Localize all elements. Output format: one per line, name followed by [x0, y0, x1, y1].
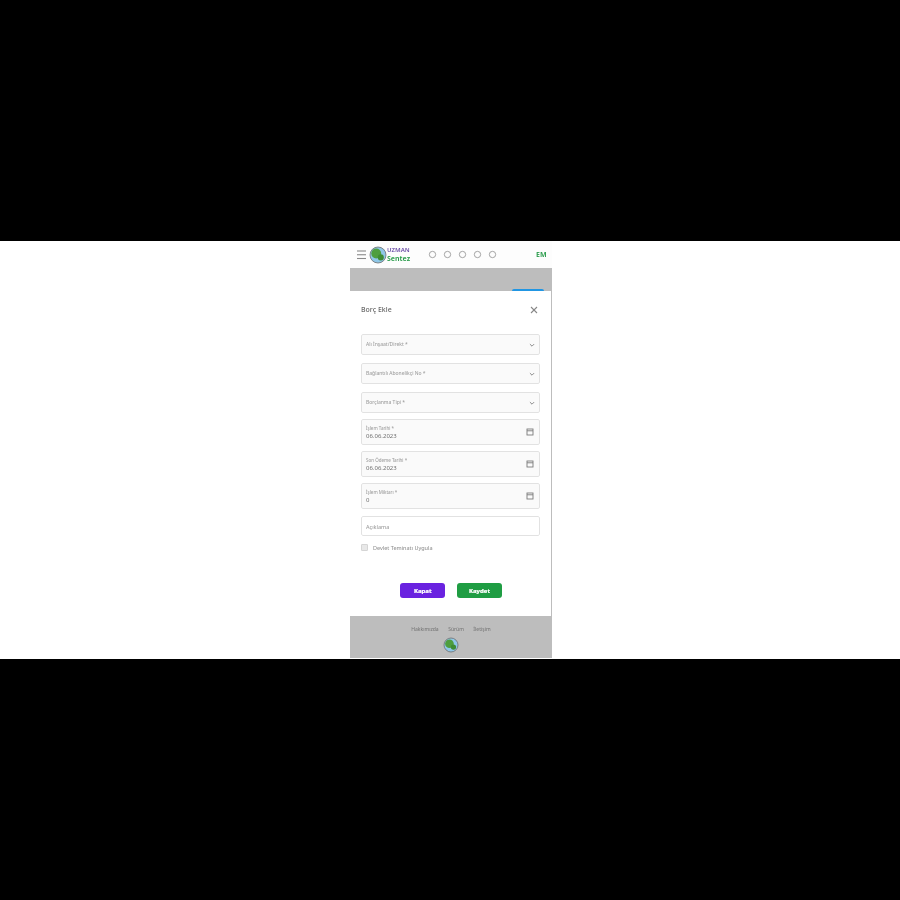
button[interactable]: Pick date — [525, 427, 535, 437]
button[interactable]: Link — [470, 247, 485, 262]
staticText: İletişim — [473, 626, 491, 633]
staticText: Sürüm — [448, 626, 464, 633]
button[interactable]: Bağlantılı Abonelikçi No * — [361, 363, 540, 384]
staticText: Kaydet — [469, 587, 490, 595]
button[interactable]: Son Ödeme Tarihi * — [361, 451, 540, 477]
staticText: UZMAN — [387, 246, 410, 254]
staticText: 06.06.2023 — [366, 432, 397, 440]
button[interactable]: Dashboard — [425, 247, 440, 262]
staticText: İşlem Tarihi * — [366, 425, 395, 431]
button[interactable]: Copy — [440, 247, 455, 262]
staticText: Devlet Teminatı Uygula — [373, 544, 433, 551]
staticText: Sentez — [387, 254, 411, 264]
button[interactable]: Açıklama — [361, 516, 540, 536]
staticText: Hakkımızda — [411, 626, 439, 633]
button[interactable]: Sürüm — [448, 626, 464, 633]
staticText: Açıklama — [366, 523, 390, 530]
staticText: Alı İnşaat/Direkt * — [366, 341, 408, 348]
button[interactable]: Ekle — [512, 289, 544, 300]
button[interactable]: Devlet Teminatı Uygula — [361, 544, 540, 551]
button[interactable]: Kaydet — [457, 583, 502, 598]
staticText: EM — [536, 250, 547, 260]
staticText: Borçlanma Tipi * — [366, 399, 406, 406]
button[interactable]: Calculator — [525, 491, 535, 501]
button[interactable]: Pick date — [525, 459, 535, 469]
button[interactable]: Borçlanma Tipi * — [361, 392, 540, 413]
staticText: İşlem Miktarı * — [366, 489, 398, 495]
button[interactable]: Menu — [355, 248, 368, 261]
staticText: Kapat — [414, 587, 432, 595]
button[interactable]: Check — [455, 247, 470, 262]
button[interactable]: Hakkımızda — [411, 626, 439, 633]
button[interactable]: Close — [528, 304, 540, 316]
staticText: Bağlantılı Abonelikçi No * — [366, 370, 426, 377]
button[interactable]: Settings — [485, 247, 500, 262]
button[interactable]: Kapat — [400, 583, 445, 598]
staticText: 0 — [366, 496, 370, 504]
button[interactable]: İşlem Tarihi * — [361, 419, 540, 445]
button[interactable]: Profile — [536, 250, 547, 260]
button[interactable]: İletişim — [473, 626, 491, 633]
button[interactable]: Alı İnşaat/Direkt * — [361, 334, 540, 355]
button[interactable]: İşlem Miktarı * — [361, 483, 540, 509]
staticText: 06.06.2023 — [366, 464, 397, 472]
staticText: Borç Ekle — [361, 305, 392, 315]
staticText: Son Ödeme Tarihi * — [366, 457, 408, 463]
